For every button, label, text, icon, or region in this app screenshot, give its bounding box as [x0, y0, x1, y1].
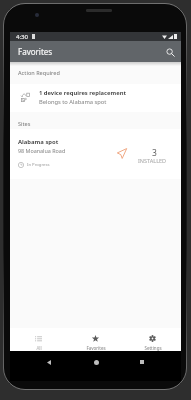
staticText: 98 Moanalua Road — [18, 147, 66, 154]
button[interactable]: Alabama spot — [10, 129, 181, 179]
button[interactable]: Search — [162, 44, 178, 60]
staticText: INSTALLED — [138, 157, 167, 164]
button[interactable]: 1 device requires replacement — [10, 84, 181, 112]
button[interactable]: Settings — [124, 328, 181, 352]
button[interactable]: Recent apps — [134, 354, 150, 370]
staticText: Action Required — [18, 69, 60, 76]
staticText: In Progress — [27, 162, 50, 168]
staticText: Favorites — [86, 345, 106, 351]
button[interactable]: All — [10, 328, 67, 352]
staticText: Settings — [144, 345, 162, 351]
button[interactable]: Home — [88, 354, 104, 370]
staticText: Favorites — [18, 46, 53, 57]
staticText: 4:30 — [16, 33, 28, 41]
staticText: 1 device requires replacement — [39, 89, 126, 97]
staticText: Belongs to Alabama spot — [39, 98, 107, 106]
staticText: Alabama spot — [18, 138, 59, 146]
staticText: 3 — [152, 147, 157, 159]
staticText: Sites — [18, 120, 31, 127]
staticText: All — [36, 345, 42, 351]
button[interactable]: Back — [41, 354, 57, 370]
button[interactable]: Favorites — [67, 328, 124, 352]
